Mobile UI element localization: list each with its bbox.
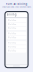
button[interactable]: Workflow: [7, 36, 26, 39]
staticText: Workflow: [8, 19, 16, 21]
staticText: Workflow: [8, 36, 16, 39]
staticText: Billing: [7, 13, 17, 16]
button[interactable]: Workflow: [7, 22, 26, 26]
staticText: Workflow: [8, 33, 16, 35]
button[interactable]: Workflow: [7, 45, 26, 49]
button[interactable]: Workflow: [7, 32, 26, 36]
button[interactable]: Workflow: [7, 41, 26, 45]
staticText: Workflow: [8, 27, 16, 29]
button[interactable]: Workflow: [7, 49, 26, 53]
staticText: Workflow: [8, 46, 16, 48]
staticText: instructions into workflows: [2, 6, 31, 8]
button[interactable]: Workflow: [7, 18, 26, 22]
staticText: Workflow: [8, 23, 16, 25]
staticText: Turn all billing: [5, 2, 27, 6]
button[interactable]: Workflow: [7, 26, 26, 30]
staticText: Workflow: [8, 50, 16, 52]
staticText: Workflow: [8, 42, 16, 44]
